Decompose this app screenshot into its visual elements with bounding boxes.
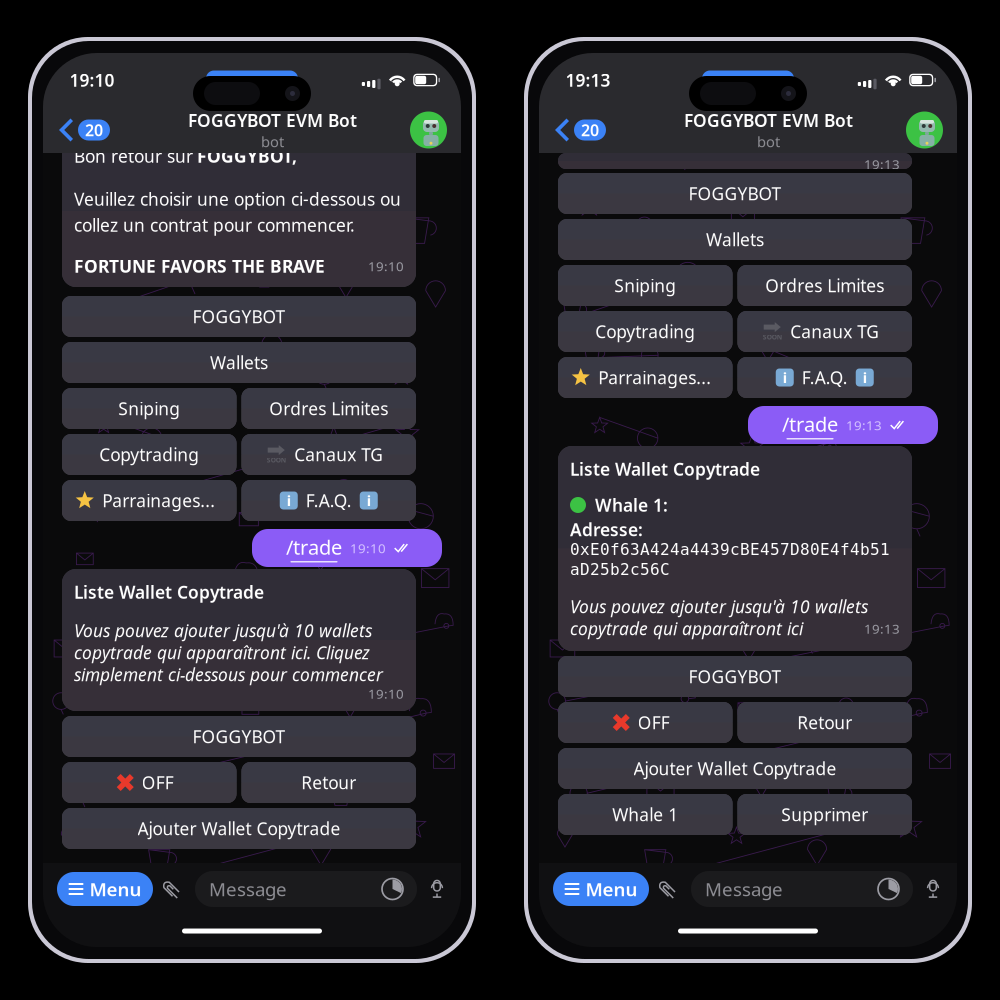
staticText: FOGGYBOT [688, 182, 781, 205]
staticText: 20 [581, 119, 599, 141]
staticText: 19:13 [864, 155, 900, 173]
staticText: i [287, 491, 291, 510]
staticText: Message [209, 877, 287, 901]
staticText: Canaux TG [790, 320, 879, 343]
staticText: TELEGRAM [227, 74, 291, 90]
staticText: simplement ci-dessous pour commencer [74, 663, 383, 686]
staticText: Vous pouvez ajouter jusqu'à 10 wallets [570, 595, 868, 618]
button[interactable]: Wallets [558, 219, 912, 260]
staticText: Message [705, 877, 783, 901]
staticText: Vous pouvez ajouter jusqu'à 10 wallets [74, 619, 372, 642]
button[interactable]: Ajouter Wallet Copytrade [62, 808, 416, 849]
button[interactable]: Copytrading [62, 434, 236, 475]
button[interactable]: Menu [553, 872, 649, 906]
button[interactable]: SOON [737, 311, 912, 352]
staticText: Whale 1 [612, 803, 678, 826]
staticText: /trade [286, 534, 342, 560]
button[interactable]: Retour [737, 702, 912, 743]
button[interactable]: Retour [241, 762, 416, 803]
button[interactable]: FOGGYBOT [62, 296, 416, 337]
button[interactable]: Menu [57, 872, 153, 906]
button[interactable]: Attach file [163, 872, 185, 906]
staticText: TELEGRAM [723, 74, 787, 90]
staticText: Copytrading [595, 320, 695, 343]
staticText: Copytrading [99, 443, 199, 466]
staticText: Retour [301, 771, 356, 794]
staticText: i [783, 368, 787, 387]
staticText: OFF [142, 771, 174, 794]
button[interactable]: OFF [558, 702, 732, 743]
button[interactable]: FOGGYBOT [558, 656, 912, 697]
staticText: 19:10 [69, 68, 114, 91]
staticText: FOGGYBOT [688, 665, 781, 688]
staticText: FOGGYBOT [192, 305, 285, 328]
staticText: FOGGYBOT EVM Bot [188, 109, 357, 132]
staticText: Wallets [706, 228, 764, 251]
button[interactable]: Copytrading [558, 311, 732, 352]
button[interactable]: OFF [62, 762, 236, 803]
button[interactable]: Stickers [878, 878, 899, 899]
button[interactable]: SOON [241, 434, 416, 475]
staticText: Retour [797, 711, 852, 734]
staticText: SOON [267, 456, 286, 464]
staticText: i [863, 368, 867, 387]
staticText: Menu [585, 877, 637, 901]
staticText: 19:13 [846, 416, 882, 434]
button[interactable]: Attach file [659, 872, 681, 906]
staticText: Menu [89, 877, 141, 901]
button[interactable]: 20 [539, 107, 631, 153]
staticText: Ajouter Wallet Copytrade [633, 757, 836, 780]
staticText: Supprimer [781, 803, 868, 826]
button[interactable]: Record voice message [923, 872, 943, 906]
staticText: F.A.Q. [802, 366, 848, 389]
staticText: 20 [85, 119, 103, 141]
staticText: bot [261, 132, 284, 151]
button[interactable]: i [737, 357, 912, 398]
button[interactable]: Ordres Limites [241, 388, 416, 429]
button[interactable]: Ajouter Wallet Copytrade [558, 748, 912, 789]
staticText: FOGGYBOT EVM Bot [684, 109, 853, 132]
staticText: Liste Wallet Copytrade [570, 457, 760, 480]
button[interactable]: Sniping [558, 265, 732, 306]
button[interactable]: Supprimer [737, 794, 912, 835]
staticText: copytrade qui apparaîtront ici [570, 617, 803, 640]
staticText: OFF [638, 711, 670, 734]
staticText: 19:10 [350, 539, 386, 557]
button[interactable]: Parrainages... [558, 357, 732, 398]
staticText: SOON [763, 333, 782, 341]
staticText: Bon retour sur [74, 144, 193, 167]
staticText: i [367, 491, 371, 510]
button[interactable]: Parrainages... [62, 480, 236, 521]
staticText: 19:10 [368, 257, 404, 275]
staticText: FOGGYBOT, [197, 144, 297, 167]
staticText: Whale 1: [595, 493, 668, 516]
staticText: F.A.Q. [306, 489, 352, 512]
button[interactable]: FOGGYBOT [558, 173, 912, 214]
staticText: Wallets [210, 351, 268, 374]
button[interactable]: FOGGYBOT [62, 716, 416, 757]
staticText: 19:13 [864, 620, 900, 637]
button[interactable]: Bot profile [410, 111, 461, 148]
staticText: Adresse: [570, 518, 643, 541]
button[interactable]: Bot profile [906, 111, 957, 148]
staticText: bot [757, 132, 780, 151]
staticText: 19:13 [565, 68, 610, 91]
button[interactable]: Ordres Limites [737, 265, 912, 306]
button[interactable]: Stickers [382, 878, 403, 899]
staticText: collez un contrat pour commencer. [74, 213, 355, 236]
staticText: copytrade qui apparaîtront ici. Cliquez [74, 641, 370, 664]
button[interactable]: Sniping [62, 388, 236, 429]
staticText: FORTUNE FAVORS THE BRAVE [74, 254, 325, 277]
staticText: Liste Wallet Copytrade [74, 580, 264, 603]
button[interactable]: Wallets [62, 342, 416, 383]
button[interactable]: i [241, 480, 416, 521]
staticText: Ajouter Wallet Copytrade [137, 817, 340, 840]
staticText: aD25b2c56C [570, 560, 670, 579]
staticText: Sniping [614, 274, 676, 297]
staticText: Parrainages... [102, 489, 215, 512]
button[interactable]: 20 [43, 107, 135, 153]
button[interactable]: Whale 1 [558, 794, 732, 835]
staticText: Parrainages... [598, 366, 711, 389]
button[interactable]: Record voice message [427, 872, 447, 906]
staticText: Ordres Limites [269, 397, 388, 420]
